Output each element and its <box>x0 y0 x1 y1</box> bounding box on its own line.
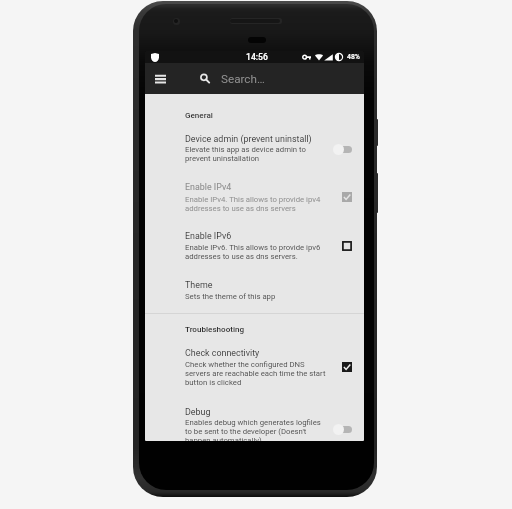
staticText: addresses to use as dns servers. <box>185 252 298 261</box>
button[interactable]: Device admin (prevent uninstall) <box>145 131 364 165</box>
staticText: addresses to use as dns servers <box>185 204 296 213</box>
staticText: Enables debug which generates logfiles <box>185 418 321 427</box>
staticText: Sets the theme of this app <box>185 292 276 301</box>
button[interactable]: Checkbox <box>340 190 354 204</box>
staticText: General <box>185 110 213 119</box>
staticText: 14:56 <box>246 52 268 62</box>
button[interactable]: Checkbox <box>340 360 354 374</box>
staticText: Enable IPv4 <box>185 182 232 192</box>
staticText: prevent uninstallation <box>185 154 260 163</box>
staticText: Check connectivity <box>185 348 260 358</box>
button[interactable]: Search <box>197 63 212 94</box>
button[interactable]: Enable IPv6 <box>145 228 364 263</box>
button[interactable]: Open navigation drawer <box>148 63 172 94</box>
staticText: Elevate this app as device admin to <box>185 145 306 154</box>
staticText: Enable IPv4. This allows to provide ipv4 <box>185 195 321 204</box>
button[interactable]: Enable IPv4 <box>145 179 364 215</box>
staticText: Enable IPv6 <box>185 231 232 241</box>
button[interactable]: Debug <box>145 404 364 441</box>
staticText: button is clicked <box>185 378 242 387</box>
staticText: to be sent to the developer (Doesn't <box>185 427 307 436</box>
staticText: Search… <box>221 72 265 86</box>
staticText: Device admin (prevent uninstall) <box>185 134 312 144</box>
button[interactable]: Toggle switch <box>333 423 353 435</box>
staticText: happen automatically) <box>185 436 262 441</box>
button[interactable]: Checkbox <box>340 239 354 253</box>
button[interactable]: Toggle switch <box>333 143 353 155</box>
button[interactable]: Check connectivity <box>145 345 364 389</box>
staticText: Debug <box>185 407 211 417</box>
staticText: servers are reachable each time the star… <box>185 369 326 378</box>
staticText: Check whether the configured DNS <box>185 360 305 369</box>
staticText: 48% <box>347 53 360 61</box>
staticText: Theme <box>185 280 213 290</box>
staticText: Troubleshooting <box>185 324 245 333</box>
staticText: Enable IPv6. This allows to provide ipv6 <box>185 243 321 252</box>
button[interactable]: Theme <box>145 277 364 303</box>
